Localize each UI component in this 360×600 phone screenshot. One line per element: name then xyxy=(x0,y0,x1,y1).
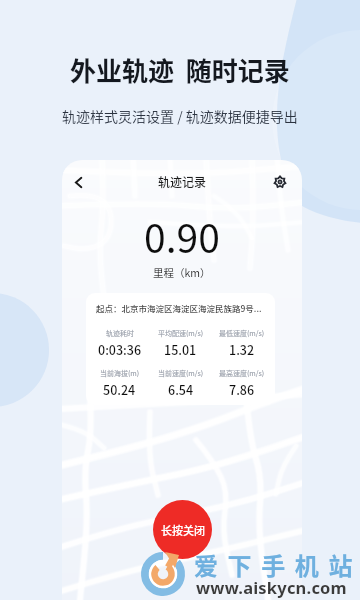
staticText: 当前速度(m/s) xyxy=(158,368,204,378)
staticText: 长按关闭 xyxy=(161,522,205,538)
button[interactable]: Settings xyxy=(266,168,294,196)
staticText: 最高速度(m/s) xyxy=(219,368,265,378)
staticText: 轨迹记录 xyxy=(158,173,207,190)
staticText: 0.90 xyxy=(144,208,220,264)
staticText: 外业轨迹 随时记录 xyxy=(70,51,290,89)
staticText: 6.54 xyxy=(168,380,194,398)
staticText: 0:03:36 xyxy=(98,340,142,358)
staticText: 轨迹样式灵活设置 / 轨迹数据便捷导出 xyxy=(62,106,298,126)
staticText: 最低速度(m/s) xyxy=(219,328,265,338)
staticText: 轨迹耗时 xyxy=(106,328,134,338)
staticText: 当前海拔(m) xyxy=(100,368,140,378)
staticText: 50.24 xyxy=(103,380,136,398)
staticText: 里程（km） xyxy=(153,265,211,280)
button[interactable]: 长按关闭 xyxy=(153,500,212,559)
staticText: 爱下手机站 xyxy=(194,547,360,582)
button[interactable]: Back xyxy=(64,168,92,196)
staticText: 7.86 xyxy=(229,380,255,398)
staticText: 起点：北京市海淀区海淀区海淀民族路9号... xyxy=(96,302,262,314)
staticText: 平均配速(m/s) xyxy=(158,328,204,338)
staticText: www.aiskycn.com xyxy=(196,576,347,598)
staticText: 15.01 xyxy=(164,340,197,358)
staticText: 1.32 xyxy=(229,340,255,358)
